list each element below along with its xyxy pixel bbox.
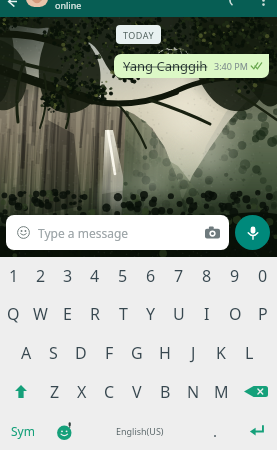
staticText: E <box>63 303 72 325</box>
staticText: H <box>159 342 171 364</box>
staticText: I <box>204 303 210 325</box>
button[interactable]: Contact photo <box>26 0 48 7</box>
staticText: Q <box>7 303 20 325</box>
button[interactable]: 5 <box>109 257 137 295</box>
button[interactable]: U <box>165 295 193 333</box>
staticText: J <box>191 342 196 364</box>
button[interactable]: K <box>207 333 235 372</box>
staticText: B <box>160 381 171 403</box>
button[interactable]: TODAY <box>116 25 161 44</box>
button[interactable]: H <box>151 333 179 372</box>
staticText: M <box>214 381 229 403</box>
button[interactable]: Backspace <box>235 372 277 411</box>
button[interactable]: E <box>54 295 81 333</box>
button[interactable]: B <box>151 372 179 411</box>
button[interactable]: 3 <box>54 257 81 295</box>
button[interactable]: Z <box>41 372 68 411</box>
staticText: TODAY <box>123 29 155 41</box>
button[interactable]: O <box>221 295 249 333</box>
button[interactable]: 0 <box>249 257 277 295</box>
button[interactable]: 7 <box>165 257 193 295</box>
button[interactable]: M <box>207 372 235 411</box>
button[interactable]: Q <box>0 295 27 333</box>
button[interactable]: 8 <box>193 257 221 295</box>
staticText: 4 <box>90 265 100 287</box>
staticText: L <box>245 342 254 364</box>
staticText: 9 <box>230 265 240 287</box>
staticText: V <box>132 381 142 403</box>
button[interactable]: R <box>81 295 109 333</box>
staticText: 3:40 PM <box>214 60 248 72</box>
staticText: Z <box>50 381 60 403</box>
staticText: . <box>213 421 218 441</box>
staticText: online <box>55 0 82 11</box>
staticText: S <box>49 342 58 364</box>
button[interactable]: J <box>179 333 207 372</box>
staticText: Yang Canggih <box>123 57 208 75</box>
staticText: 8 <box>202 265 212 287</box>
button[interactable]: 4 <box>81 257 109 295</box>
button[interactable]: Yang Canggih <box>114 54 269 78</box>
staticText: U <box>173 303 185 325</box>
button[interactable]: Sym <box>0 411 45 450</box>
staticText: X <box>77 381 87 403</box>
staticText: 2 <box>36 265 46 287</box>
button[interactable]: F <box>95 333 123 372</box>
staticText: 0 <box>258 265 268 287</box>
staticText: Y <box>146 303 156 325</box>
staticText: D <box>75 342 87 364</box>
button[interactable]: Enter <box>235 411 277 450</box>
button[interactable]: Back <box>2 0 20 10</box>
button[interactable]: . <box>196 411 235 450</box>
button[interactable]: Type a message <box>6 215 229 250</box>
button[interactable]: S <box>40 333 67 372</box>
staticText: C <box>104 381 115 403</box>
staticText: P <box>258 303 268 325</box>
button[interactable]: A <box>13 333 40 372</box>
button[interactable]: X <box>68 372 95 411</box>
staticText: G <box>131 342 143 364</box>
button[interactable]: Video call <box>226 0 244 9</box>
button[interactable]: More options <box>255 0 271 8</box>
button[interactable]: D <box>67 333 95 372</box>
staticText: English(US) <box>116 425 164 437</box>
button[interactable]: G <box>123 333 151 372</box>
button[interactable]: L <box>235 333 263 372</box>
button[interactable]: I <box>193 295 221 333</box>
staticText: 3 <box>63 265 73 287</box>
staticText: 5 <box>118 265 128 287</box>
button[interactable]: Y <box>137 295 165 333</box>
staticText: W <box>33 303 48 325</box>
button[interactable]: V <box>123 372 151 411</box>
staticText: R <box>90 303 100 325</box>
button[interactable]: 9 <box>221 257 249 295</box>
button[interactable]: C <box>95 372 123 411</box>
button[interactable]: W <box>27 295 54 333</box>
button[interactable]: N <box>179 372 207 411</box>
button[interactable]: P <box>249 295 277 333</box>
staticText: Type a message <box>38 225 129 241</box>
staticText: T <box>119 303 128 325</box>
staticText: N <box>187 381 200 403</box>
staticText: O <box>229 303 242 325</box>
button[interactable]: 2 <box>27 257 54 295</box>
staticText: A <box>21 342 32 364</box>
button[interactable]: 6 <box>137 257 165 295</box>
button[interactable]: Voice message <box>235 215 270 250</box>
staticText: F <box>105 342 114 364</box>
staticText: K <box>216 342 226 364</box>
button[interactable]: Shift <box>0 372 41 411</box>
button[interactable]: T <box>109 295 137 333</box>
staticText: 1 <box>9 265 19 287</box>
button[interactable]: 1 <box>0 257 27 295</box>
staticText: 6 <box>146 265 156 287</box>
staticText: Sym <box>11 423 35 439</box>
button[interactable]: English(US) <box>84 411 196 450</box>
button[interactable]: Voice input <box>45 411 84 450</box>
staticText: 7 <box>174 265 184 287</box>
